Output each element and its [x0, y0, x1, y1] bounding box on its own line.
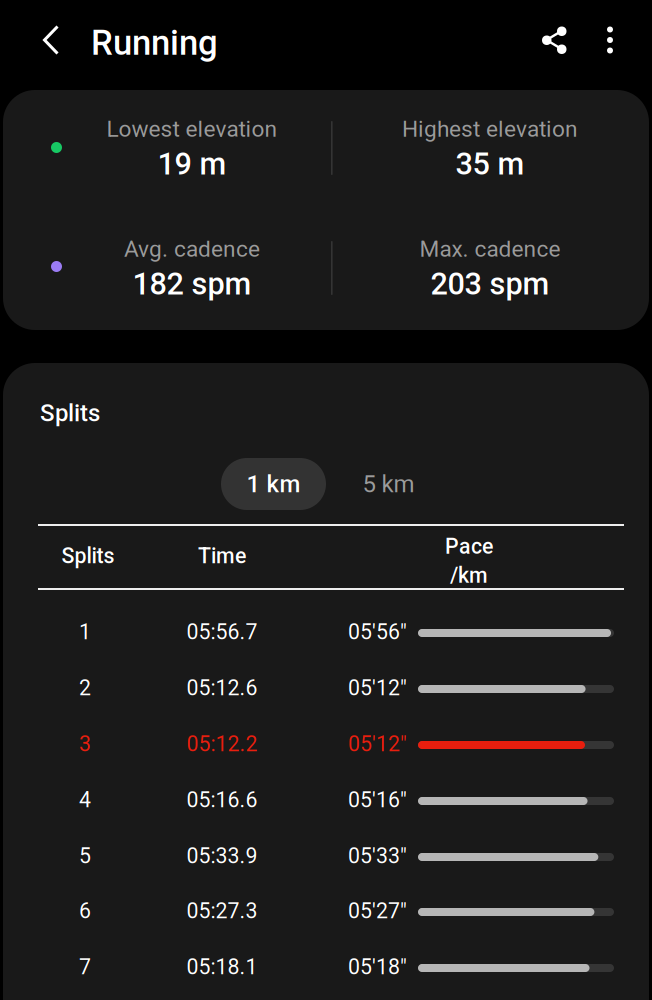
staticText: 1	[79, 619, 91, 644]
staticText: 05'18"	[348, 954, 407, 979]
button[interactable]: Share	[516, 0, 592, 80]
staticText: Avg. cadence	[124, 236, 260, 262]
staticText: Max. cadence	[419, 236, 560, 262]
staticText: Lowest elevation	[106, 116, 277, 142]
staticText: 19 m	[157, 146, 226, 182]
staticText: 05:12.2	[186, 731, 257, 756]
staticText: 05:27.3	[186, 898, 257, 923]
staticText: 35 m	[455, 146, 524, 182]
staticText: 05:56.7	[186, 619, 257, 644]
staticText: Splits	[61, 543, 114, 568]
staticText: Splits	[40, 399, 100, 427]
staticText: 4	[79, 787, 91, 812]
staticText: 05'12"	[348, 731, 407, 756]
staticText: 05'16"	[348, 787, 407, 812]
staticText: 05:12.6	[186, 675, 257, 700]
button[interactable]: 1 km	[221, 458, 326, 510]
staticText: 05'27"	[348, 898, 407, 923]
staticText: 05:16.6	[186, 787, 257, 812]
staticText: 6	[79, 898, 91, 923]
button[interactable]: More options	[581, 0, 639, 80]
staticText: Highest elevation	[402, 116, 578, 142]
staticText: 5 km	[362, 470, 414, 498]
staticText: Time	[198, 543, 246, 568]
staticText: 1 km	[246, 470, 300, 498]
staticText: 05'33"	[348, 843, 407, 868]
staticText: 2	[79, 675, 91, 700]
staticText: 7	[79, 954, 91, 979]
button[interactable]: Back	[8, 0, 94, 80]
button[interactable]: Running	[91, 0, 251, 86]
staticText: 05'12"	[348, 675, 407, 700]
staticText: /km	[450, 563, 488, 588]
staticText: 05:33.9	[186, 843, 257, 868]
staticText: Pace	[445, 534, 493, 559]
staticText: 182 spm	[132, 266, 251, 302]
staticText: 5	[79, 843, 91, 868]
staticText: Running	[91, 23, 218, 63]
staticText: 3	[79, 731, 91, 756]
staticText: 05:18.1	[186, 954, 257, 979]
staticText: 05'56"	[348, 619, 407, 644]
button[interactable]: 5 km	[336, 458, 441, 510]
staticText: 203 spm	[430, 266, 549, 302]
